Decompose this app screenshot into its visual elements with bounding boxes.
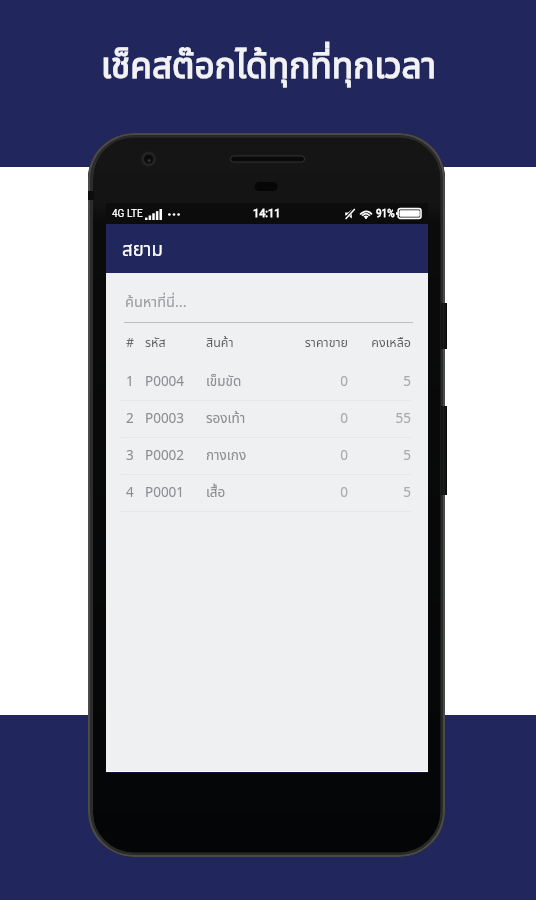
staticText: 14:11 — [253, 207, 281, 220]
staticText: 55 — [341, 409, 411, 429]
staticText: 3 — [126, 446, 134, 466]
button[interactable]: 1 — [106, 364, 428, 401]
staticText: รองเท้า — [206, 409, 246, 429]
staticText: # — [126, 334, 135, 353]
staticText: 91% — [376, 208, 395, 220]
staticText: P0003 — [145, 409, 185, 429]
button[interactable]: 3 — [106, 438, 428, 475]
button[interactable]: สยาม — [106, 224, 428, 273]
staticText: 2 — [126, 409, 134, 429]
staticText: 0 — [278, 409, 348, 429]
staticText: กางเกง — [206, 446, 247, 466]
staticText: ราคาขาย — [278, 334, 348, 353]
staticText: 0 — [278, 483, 348, 503]
staticText: 5 — [341, 446, 411, 466]
staticText: P0001 — [145, 483, 185, 503]
staticText: เข็มขัด — [206, 372, 242, 392]
button[interactable]: 2 — [106, 401, 428, 438]
staticText: 5 — [341, 372, 411, 392]
staticText: 1 — [126, 372, 134, 392]
staticText: 4 — [126, 483, 134, 503]
staticText: 5 — [341, 483, 411, 503]
staticText: คงเหลือ — [341, 334, 411, 353]
staticText: เช็คสต๊อกได้ทุกที่ทุกเวลา — [101, 41, 436, 94]
staticText: 0 — [278, 446, 348, 466]
staticText: เสื้อ — [206, 483, 226, 503]
staticText: รหัส — [145, 334, 166, 353]
staticText: P0004 — [145, 372, 185, 392]
staticText: 0 — [278, 372, 348, 392]
button[interactable]: 4 — [106, 475, 428, 512]
staticText: ค้นหาที่นี่... — [125, 292, 187, 314]
staticText: P0002 — [145, 446, 185, 466]
staticText: สินค้า — [206, 334, 234, 353]
button[interactable]: ค้นหาที่นี่... — [106, 273, 428, 322]
staticText: สยาม — [122, 236, 163, 264]
staticText: 4G LTE — [112, 208, 143, 220]
